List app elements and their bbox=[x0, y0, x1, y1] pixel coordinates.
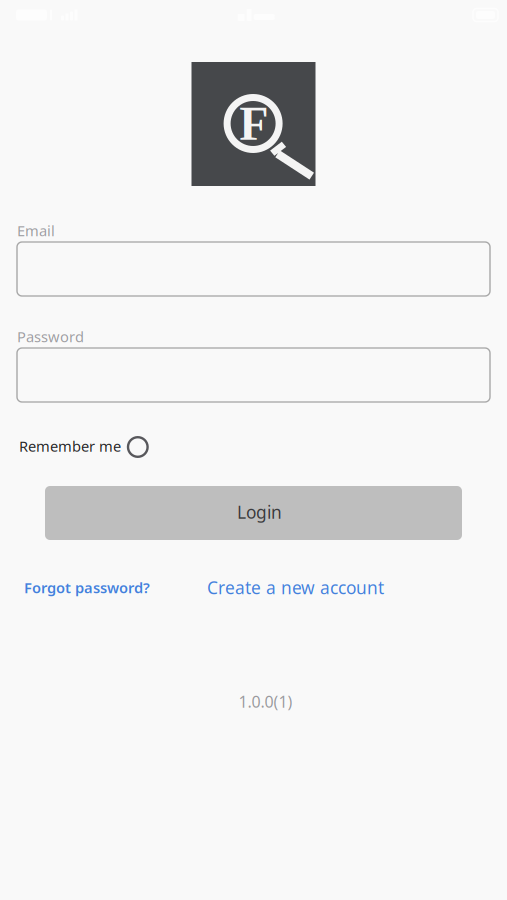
staticText: Remember me bbox=[19, 436, 121, 456]
button[interactable]: Login bbox=[45, 486, 462, 540]
staticText: Password bbox=[17, 327, 84, 346]
staticText: Create a new account bbox=[207, 576, 384, 599]
staticText: Email bbox=[17, 221, 55, 240]
staticText: Login bbox=[237, 500, 282, 523]
staticText: Forgot password? bbox=[24, 578, 150, 597]
staticText: F bbox=[239, 97, 268, 150]
button[interactable]: Remember me bbox=[19, 437, 148, 461]
staticText: 1.0.0(1) bbox=[238, 691, 292, 712]
button[interactable]: Create a new account bbox=[207, 576, 384, 599]
button[interactable]: Forgot password? bbox=[24, 578, 150, 597]
